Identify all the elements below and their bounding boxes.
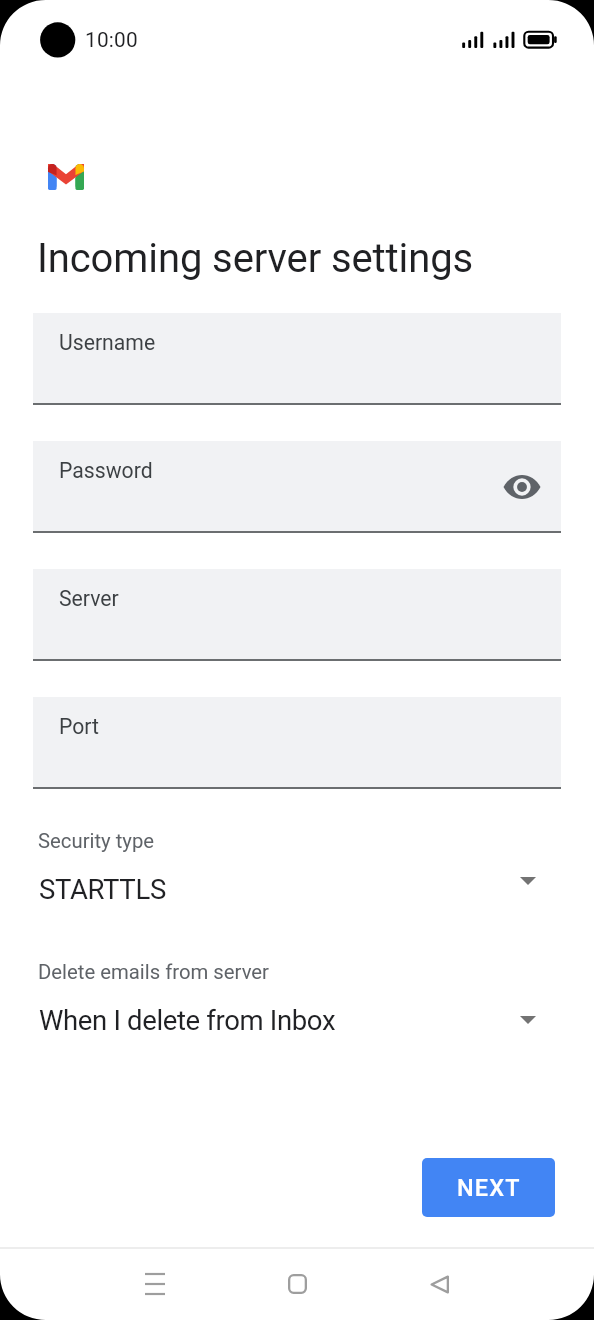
button[interactable]: NEXT	[422, 1158, 555, 1217]
button[interactable]: Security type	[0, 819, 594, 903]
staticText: Port	[59, 714, 99, 739]
button[interactable]: Server	[33, 569, 561, 661]
staticText: Incoming server settings	[37, 235, 474, 282]
button[interactable]: Back	[404, 1248, 474, 1320]
staticText: Username	[59, 330, 156, 355]
button[interactable]: Recent apps	[120, 1248, 190, 1320]
staticText: 10:00	[85, 28, 138, 52]
button[interactable]: Delete emails from server	[0, 950, 594, 1034]
button[interactable]: Password	[33, 441, 561, 533]
button[interactable]: Home	[262, 1248, 332, 1320]
staticText: Password	[59, 458, 153, 483]
staticText: Delete emails from server	[38, 960, 269, 984]
staticText: STARTTLS	[39, 873, 166, 905]
button[interactable]: Port	[33, 697, 561, 789]
staticText: When I delete from Inbox	[39, 1004, 336, 1036]
button[interactable]: Username	[33, 313, 561, 405]
staticText: NEXT	[457, 1174, 521, 1202]
staticText: Server	[59, 586, 119, 611]
button[interactable]: Show password	[498, 463, 546, 511]
staticText: Security type	[38, 829, 155, 853]
